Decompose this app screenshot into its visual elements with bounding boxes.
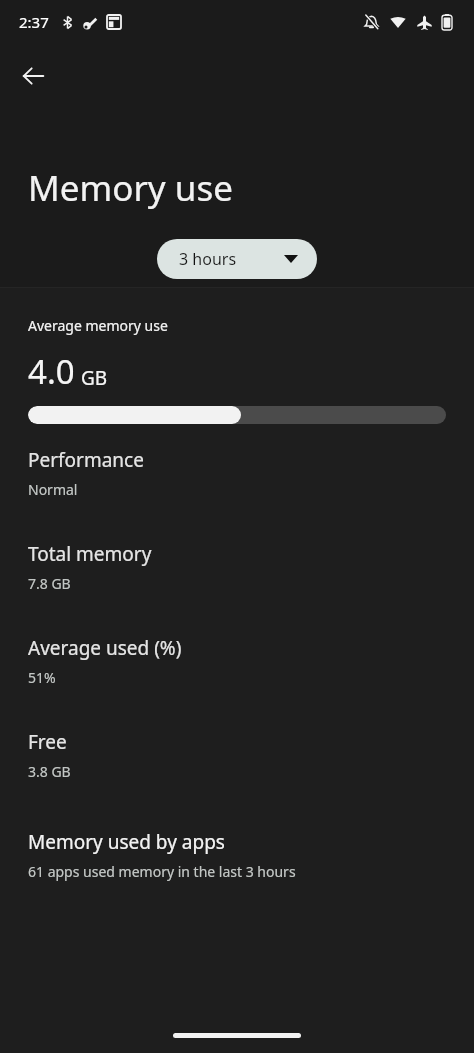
- staticText: 61 apps used memory in the last 3 hours: [28, 862, 296, 881]
- staticText: 3.8 GB: [28, 762, 71, 781]
- button[interactable]: 3 hours: [157, 239, 317, 279]
- staticText: Normal: [28, 480, 78, 499]
- staticText: 3 hours: [179, 248, 237, 270]
- staticText: Performance: [28, 447, 144, 473]
- staticText: 4.0: [28, 349, 75, 394]
- staticText: 7.8 GB: [28, 574, 71, 593]
- staticText: Total memory: [28, 541, 152, 567]
- staticText: Free: [28, 729, 67, 755]
- staticText: 51%: [28, 668, 56, 687]
- staticText: Average used (%): [28, 635, 182, 661]
- staticText: Memory used by apps: [28, 829, 225, 855]
- button[interactable]: Free: [0, 726, 474, 784]
- staticText: Memory use: [28, 164, 233, 212]
- button[interactable]: Performance: [0, 444, 474, 502]
- staticText: Average memory use: [28, 316, 168, 335]
- button[interactable]: Back: [13, 56, 53, 96]
- button[interactable]: Average used (%): [0, 632, 474, 690]
- button[interactable]: Memory used by apps: [0, 826, 474, 884]
- staticText: GB: [81, 365, 108, 391]
- staticText: 2:37: [19, 12, 49, 32]
- button[interactable]: Total memory: [0, 538, 474, 596]
